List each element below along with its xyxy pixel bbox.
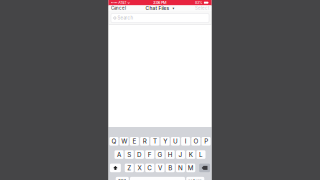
staticText: Y <box>163 137 167 145</box>
staticText: D <box>137 151 142 158</box>
staticText: T <box>153 137 157 145</box>
staticText: return <box>188 178 202 180</box>
button[interactable]: Shift <box>110 164 121 172</box>
staticText: Chat Files <box>145 5 169 11</box>
button[interactable]: X <box>135 164 144 172</box>
button[interactable]: N <box>176 164 185 172</box>
staticText: Select <box>195 5 209 11</box>
staticText: 3:06 PM <box>153 0 167 5</box>
staticText: U <box>173 137 178 145</box>
button[interactable]: Select <box>192 5 211 11</box>
staticText: Search <box>118 15 134 21</box>
staticText: N <box>178 164 183 172</box>
button[interactable]: Z <box>125 164 134 172</box>
button[interactable]: K <box>186 150 195 159</box>
button[interactable]: D <box>135 150 144 159</box>
staticText: K <box>189 151 193 158</box>
staticText: R <box>143 137 147 145</box>
staticText: Q <box>111 137 116 145</box>
staticText: B <box>168 164 172 172</box>
button[interactable]: F <box>145 150 154 159</box>
button[interactable]: B <box>166 164 175 172</box>
staticText: W <box>121 137 127 145</box>
staticText: P <box>204 137 208 145</box>
staticText: Cancel <box>111 5 126 11</box>
button[interactable]: Cancel <box>108 5 129 11</box>
button[interactable]: R <box>140 137 149 146</box>
staticText: 83% <box>195 0 204 5</box>
button[interactable]: A <box>114 150 123 159</box>
button[interactable]: Chat Files <box>144 5 176 11</box>
button[interactable]: V <box>155 164 164 172</box>
staticText: J <box>178 151 182 158</box>
staticText: C <box>147 164 152 172</box>
staticText: ▾ <box>173 6 175 10</box>
button[interactable]: H <box>166 150 175 159</box>
button[interactable]: E <box>130 137 139 146</box>
staticText: I <box>185 137 187 145</box>
button[interactable]: T <box>150 137 159 146</box>
button[interactable]: U <box>171 137 180 146</box>
staticText: G <box>157 151 162 158</box>
button[interactable]: Y <box>161 137 170 146</box>
button[interactable]: C <box>145 164 154 172</box>
button[interactable]: Q <box>109 137 118 146</box>
staticText: S <box>127 151 131 158</box>
button[interactable]: W <box>120 137 129 146</box>
staticText: F <box>148 151 152 158</box>
staticText: ᯤ <box>126 0 130 5</box>
button[interactable]: return <box>186 177 204 180</box>
staticText: V <box>158 164 162 172</box>
staticText: 123 <box>118 178 126 180</box>
staticText: A <box>117 151 121 158</box>
button[interactable]: O <box>191 137 200 146</box>
button[interactable]: 123 <box>116 177 129 180</box>
button[interactable]: G <box>155 150 164 159</box>
staticText: Z <box>127 164 131 172</box>
staticText: O <box>193 137 198 145</box>
button[interactable]: S <box>125 150 134 159</box>
button[interactable]: I <box>181 137 190 146</box>
staticText: X <box>137 164 141 172</box>
staticText: H <box>168 151 173 158</box>
button[interactable]: Delete <box>199 164 210 172</box>
button[interactable]: M <box>186 164 195 172</box>
staticText: E <box>132 137 136 145</box>
staticText: M <box>188 164 194 172</box>
button[interactable]: P <box>202 137 211 146</box>
staticText: L <box>199 151 203 158</box>
button[interactable]: L <box>196 150 205 159</box>
button[interactable]: J <box>176 150 185 159</box>
staticText: AT&T <box>117 0 126 5</box>
